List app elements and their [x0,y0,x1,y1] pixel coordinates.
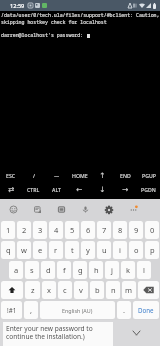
button[interactable]: q [1,241,15,259]
button[interactable]: 0 [145,221,159,239]
staticText: ESC [6,172,16,179]
button[interactable]: → [114,182,137,196]
button[interactable]: ⇄ [0,182,22,196]
staticText: 4 [54,225,59,235]
button[interactable]: h [89,261,103,279]
button[interactable]: Enter your new password to continue the … [3,322,113,346]
staticText: k [126,265,131,275]
button[interactable]: Backspace [138,281,159,299]
staticText: 5 [70,225,75,235]
button[interactable]: Stickers [49,199,73,220]
button[interactable]: y [81,241,95,259]
staticText: → [122,185,129,194]
staticText: n [111,285,116,295]
button[interactable]: CTRL [22,182,45,196]
staticText: darren@localhost's password: [1,32,87,39]
staticText: ALT [52,186,61,193]
button[interactable]: k [121,261,135,279]
button[interactable]: Shift [1,281,23,299]
button[interactable]: More options [121,199,145,220]
staticText: , [30,305,33,315]
staticText: f [63,265,66,275]
button[interactable]: ↑ [91,168,114,182]
button[interactable]: f [57,261,71,279]
button[interactable]: b [90,281,104,299]
button[interactable]: Collapse [113,320,160,346]
button[interactable]: m [122,281,136,299]
staticText: m [125,285,133,295]
button[interactable]: e [33,241,47,259]
button[interactable]: 8 [113,221,127,239]
button[interactable]: s [25,261,39,279]
button[interactable]: a [9,261,23,279]
button[interactable]: j [105,261,119,279]
button[interactable]: ← [68,182,91,196]
staticText: 2 [22,225,27,235]
button[interactable]: c [58,281,72,299]
button[interactable]: x [42,281,56,299]
button[interactable]: t [65,241,79,259]
button[interactable]: 1 [1,221,15,239]
button[interactable]: 5 [65,221,79,239]
button[interactable]: l [137,261,151,279]
staticText: 0 [150,225,155,235]
button[interactable]: 7 [97,221,111,239]
staticText: PGDN [141,186,156,193]
staticText: j [111,265,113,275]
button[interactable]: ESC [0,168,22,182]
button[interactable]: i [113,241,127,259]
button[interactable]: v [74,281,88,299]
button[interactable]: g [73,261,87,279]
button[interactable]: r [49,241,63,259]
staticText: 7 [102,225,107,235]
button[interactable]: Voice input [73,199,97,220]
button[interactable]: d [41,261,55,279]
button[interactable]: Clipboard [25,199,49,220]
button[interactable]: Keyboard settings [97,199,121,220]
button[interactable]: 6 [81,221,95,239]
button[interactable]: p [145,241,159,259]
staticText: r [54,245,58,255]
button[interactable]: !#1 [1,301,22,319]
staticText: ↑ [99,171,106,180]
button[interactable]: o [129,241,143,259]
staticText: e [38,245,43,255]
staticText: s [30,265,34,275]
staticText: Enter your new password to continue the … [6,324,93,341]
staticText: b [95,285,100,295]
button[interactable]: Done [133,301,159,319]
staticText: 12:59 [10,2,25,10]
staticText: skipping hostkey check for localhost [1,19,107,26]
button[interactable]: 9 [129,221,143,239]
button[interactable]: ALT [45,182,68,196]
button[interactable]: . [117,301,131,319]
staticText: English (AU) [62,307,93,314]
button[interactable]: , [24,301,38,319]
button[interactable]: ↓ [91,182,114,196]
staticText: 1 [6,225,11,235]
button[interactable]: 4 [49,221,63,239]
button[interactable]: English (AU) [40,301,115,319]
staticText: / [33,172,35,179]
button[interactable]: n [106,281,120,299]
staticText: x [47,285,51,295]
button[interactable]: / [22,168,45,182]
button[interactable]: PGUP [137,168,160,182]
button[interactable]: 2 [17,221,31,239]
button[interactable]: w [17,241,31,259]
staticText: CTRL [27,186,40,193]
staticText: y [86,245,90,255]
staticText: d [46,265,51,275]
button[interactable]: Emoji [1,199,25,220]
button[interactable]: u [97,241,111,259]
button[interactable]: END [114,168,137,182]
button[interactable]: z [25,281,40,299]
button[interactable]: — [45,168,68,182]
staticText: END [120,172,131,179]
staticText: !#1 [7,306,17,314]
staticText: p [150,245,155,255]
button[interactable]: 3 [33,221,47,239]
button[interactable]: HOME [68,168,91,182]
button[interactable]: PGDN [137,182,160,196]
staticText: z [31,285,35,295]
